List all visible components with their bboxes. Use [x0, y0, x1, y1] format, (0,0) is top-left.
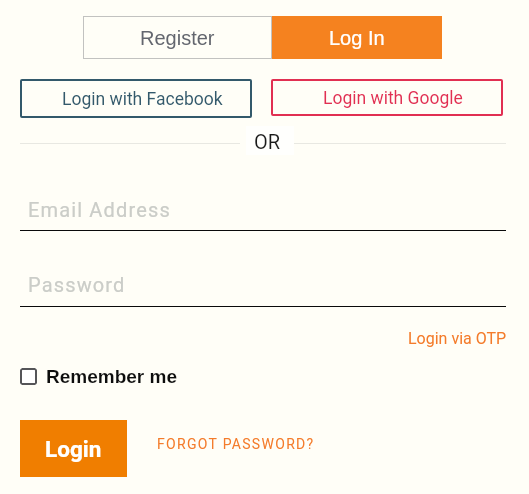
button[interactable]: Register [83, 16, 272, 59]
button[interactable]: FORGOT PASSWORD? [153, 432, 319, 456]
button[interactable]: Login [20, 420, 127, 477]
button[interactable]: Login with Facebook [20, 79, 252, 118]
button[interactable]: Login with Google [271, 79, 503, 116]
button[interactable]: Log In [272, 16, 442, 59]
button[interactable]: Remember me [20, 362, 177, 390]
button[interactable]: Login via OTP [404, 325, 511, 352]
staticText: Login with Facebook [62, 89, 223, 110]
staticText: Login via OTP [408, 329, 507, 348]
staticText: OR [254, 130, 281, 153]
staticText: Register [140, 27, 215, 49]
staticText: Email Address [28, 198, 171, 221]
staticText: Login [45, 436, 102, 462]
staticText: Login with Google [323, 88, 463, 109]
staticText: Log In [329, 27, 385, 49]
staticText: FORGOT PASSWORD? [157, 436, 315, 452]
staticText: Remember me [46, 366, 177, 387]
staticText: Password [28, 273, 126, 296]
